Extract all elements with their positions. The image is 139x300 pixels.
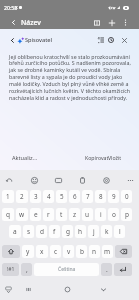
button[interactable]: w [16,208,28,221]
button[interactable]: n [89,245,100,258]
button[interactable]: 0 [121,190,132,203]
button[interactable]: Settings [100,174,112,186]
button[interactable]: Back [7,35,18,46]
button[interactable]: Shift [2,245,20,258]
button[interactable]: 7 [82,190,93,203]
button[interactable]: v [63,245,74,258]
staticText: d [40,227,44,236]
staticText: !#1 [7,266,15,273]
button[interactable]: 1 [2,190,14,203]
button[interactable]: o [108,208,119,221]
button[interactable]: !#1 [2,263,19,276]
button[interactable]: Enter [114,263,132,276]
button[interactable]: q [2,208,14,221]
staticText: 2 [20,192,24,201]
button[interactable]: u [82,208,93,221]
button[interactable]: x [36,245,48,258]
button[interactable]: t [56,208,67,221]
button[interactable]: k [101,225,112,238]
staticText: g [66,227,70,236]
staticText: Název [21,18,41,27]
button[interactable]: j [88,225,99,238]
staticText: j [93,227,95,236]
button[interactable]: 3 [30,190,41,203]
staticText: y [26,247,30,256]
button[interactable]: Kopírovat [82,152,112,163]
button[interactable]: More [124,174,136,186]
button[interactable]: 2 [16,190,28,203]
staticText: c [54,247,58,256]
button[interactable]: Back [8,17,19,28]
button[interactable]: Clipboard [76,174,88,186]
button[interactable]: r [43,208,54,221]
staticText: Vložit [108,154,122,161]
staticText: i [100,210,102,219]
button[interactable]: 5 [56,190,67,203]
button[interactable]: GIF [52,174,64,186]
staticText: k [105,227,109,236]
button[interactable]: Close [118,34,130,46]
staticText: 9 [112,192,116,201]
staticText: v [67,247,71,256]
staticText: 4 [47,192,51,201]
staticText: f [53,227,56,236]
button[interactable]: , [21,263,32,276]
button[interactable]: Reading mode [91,17,103,29]
button[interactable]: i [95,208,106,221]
button[interactable]: d [36,225,47,238]
staticText: Čeština [58,266,76,273]
button[interactable]: z [69,208,80,221]
button[interactable]: l [114,225,125,238]
button[interactable]: Vložit [105,152,125,163]
button[interactable]: History [105,34,117,46]
button[interactable]: Home [60,282,74,296]
button[interactable]: Recents [21,282,35,296]
staticText: 0 [125,192,129,201]
staticText: h [78,227,83,236]
staticText: . [106,265,108,274]
button[interactable]: c [50,245,61,258]
button[interactable]: 8 [95,190,106,203]
staticText: p [125,210,129,219]
staticText: w [19,210,25,219]
button[interactable]: Undo [3,174,15,186]
button[interactable]: b [76,245,87,258]
button[interactable]: f [49,225,60,238]
staticText: l [119,227,121,236]
staticText: Její oblíbenou kratochvílí se stalo proz… [9,53,131,102]
button[interactable]: 4 [43,190,54,203]
staticText: u [85,210,90,219]
staticText: o [112,210,116,219]
button[interactable]: y [22,245,34,258]
button[interactable]: p [121,208,132,221]
staticText: a [13,227,17,236]
staticText: t [60,210,63,219]
button[interactable]: m [102,245,113,258]
button[interactable]: s [23,225,34,238]
button[interactable]: More options [120,17,131,28]
button[interactable]: Backspace [115,245,132,258]
button[interactable]: g [62,225,73,238]
button[interactable]: e [30,208,41,221]
staticText: b [80,247,84,256]
button[interactable]: Add [106,17,118,29]
staticText: 6 [73,192,77,201]
button[interactable]: . [101,263,112,276]
staticText: r [47,210,50,219]
staticText: 5 [60,192,64,201]
staticText: e [34,210,38,219]
staticText: s [27,227,31,236]
button[interactable]: a [9,225,21,238]
button[interactable]: 6 [69,190,80,203]
button[interactable]: h [75,225,86,238]
button[interactable]: Aktualiz... [9,152,41,164]
button[interactable]: Hide keyboard [1,282,15,296]
staticText: , [26,265,28,274]
staticText: Kopírovat [85,154,109,161]
button[interactable]: Čeština [34,263,99,276]
button[interactable]: Back [96,282,110,296]
button[interactable]: Formatting [95,34,107,46]
button[interactable]: 9 [108,190,119,203]
button[interactable]: Stickers [28,174,40,186]
staticText: 1 [6,192,10,201]
